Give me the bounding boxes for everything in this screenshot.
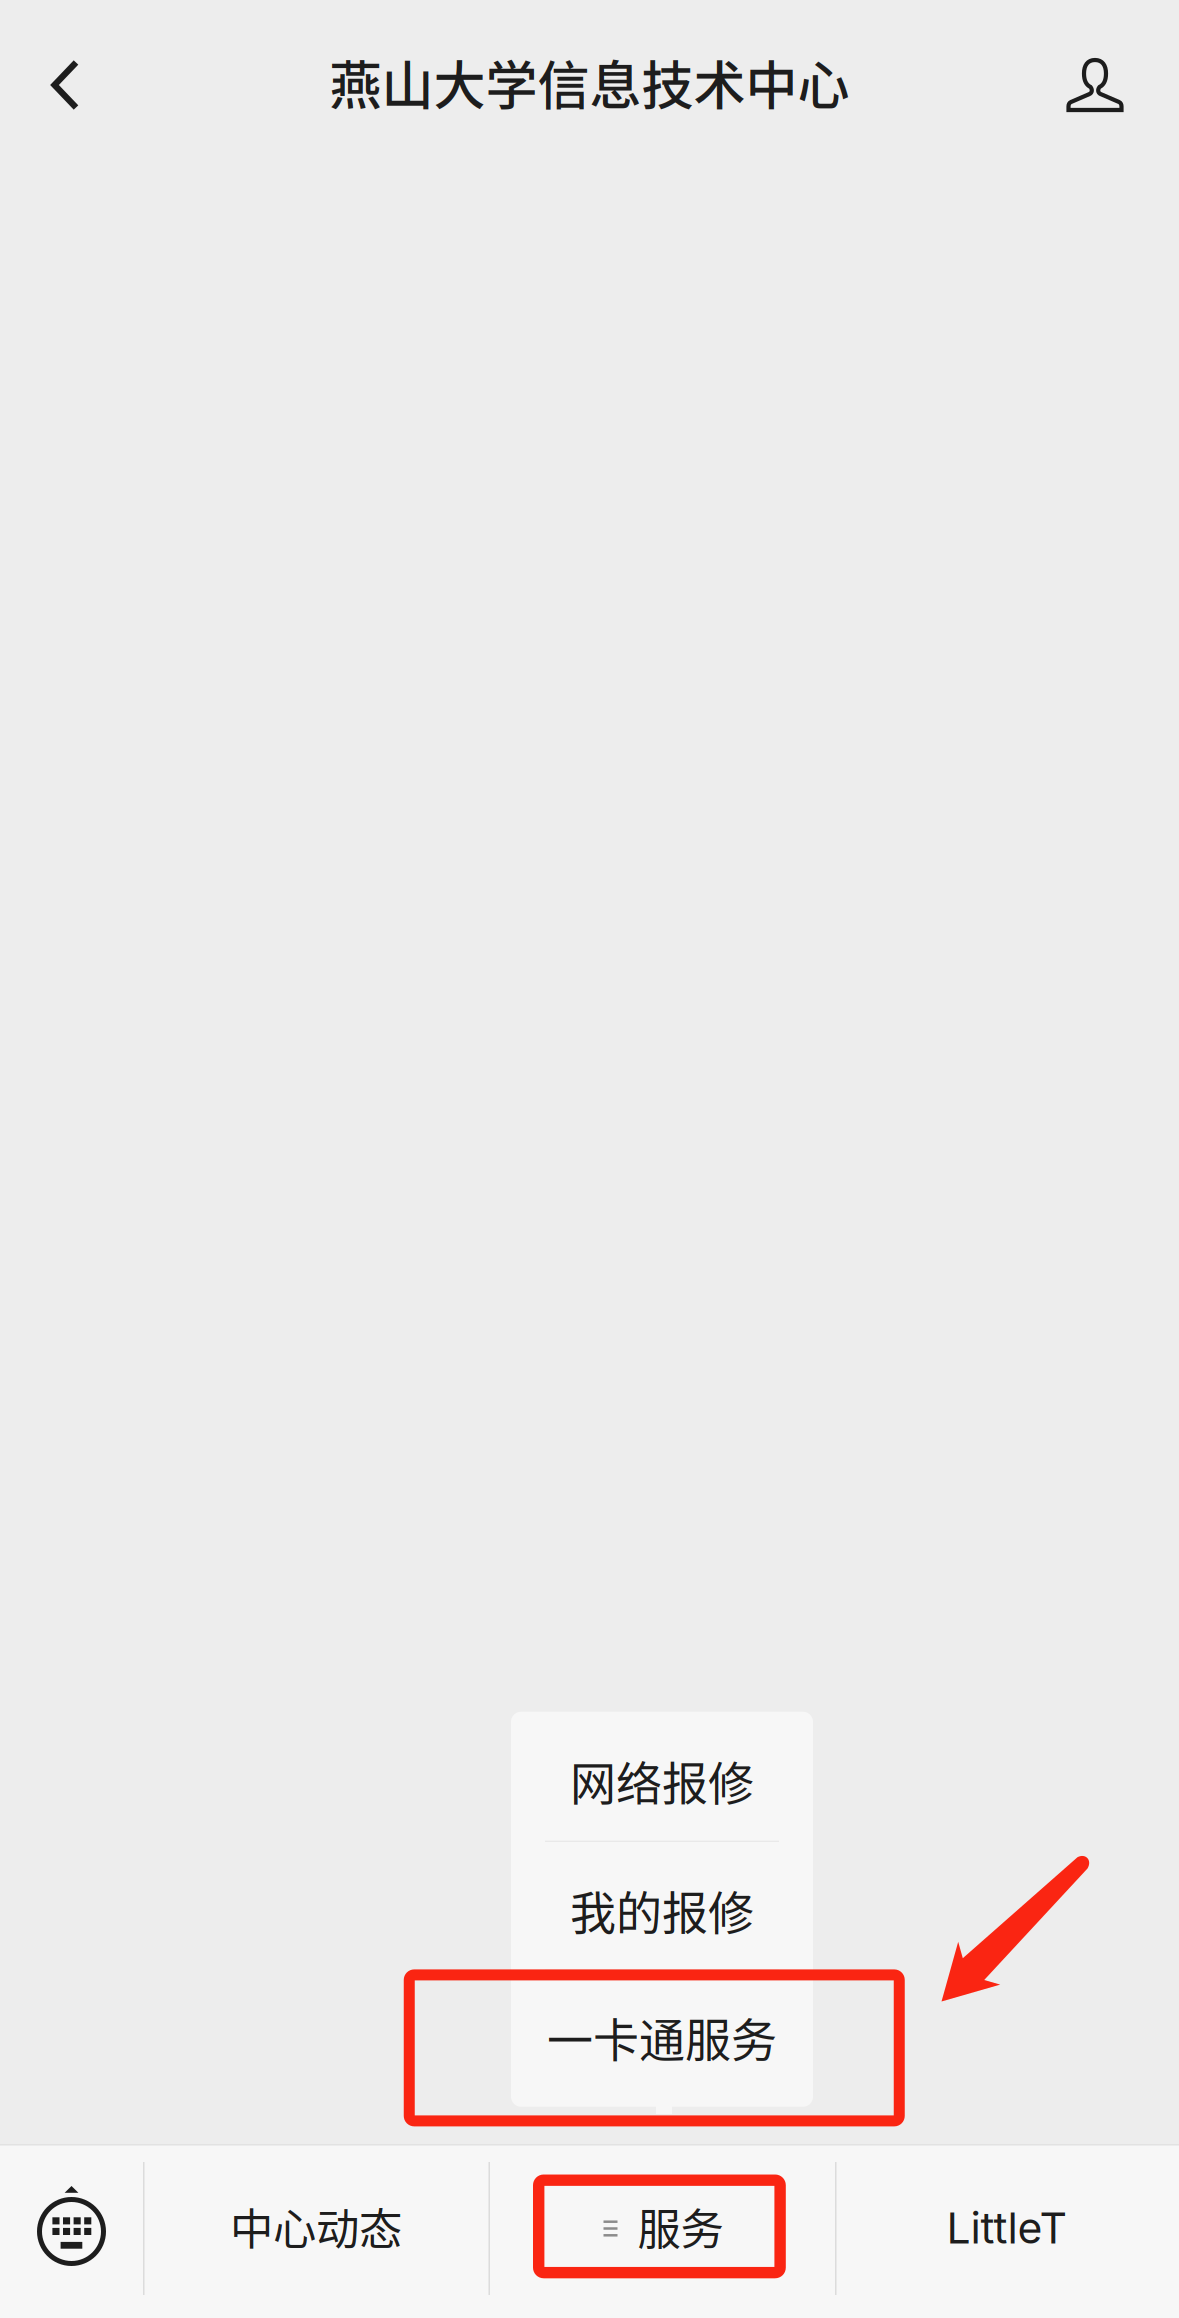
staticText: 服务	[637, 2195, 723, 2257]
button[interactable]: 中心动态	[143, 2144, 489, 2318]
button[interactable]: LittleT	[835, 2144, 1179, 2318]
button[interactable]: 服务	[489, 2144, 835, 2318]
staticText: 一卡通服务	[547, 2003, 777, 2070]
button[interactable]: 一卡通服务	[511, 1971, 813, 2107]
button[interactable]: Back	[0, 15, 128, 155]
button[interactable]: Official account profile	[1011, 15, 1179, 155]
button[interactable]: Keyboard	[0, 2144, 143, 2318]
staticText: 中心动态	[230, 2195, 402, 2257]
button[interactable]: 网络报修	[511, 1712, 813, 1841]
staticText: 燕山大学信息技术中心	[329, 44, 849, 120]
staticText: 我的报修	[570, 1876, 754, 1943]
button[interactable]: 我的报修	[511, 1842, 813, 1970]
staticText: 网络报修	[570, 1747, 754, 1813]
staticText: LittleT	[946, 2202, 1067, 2254]
